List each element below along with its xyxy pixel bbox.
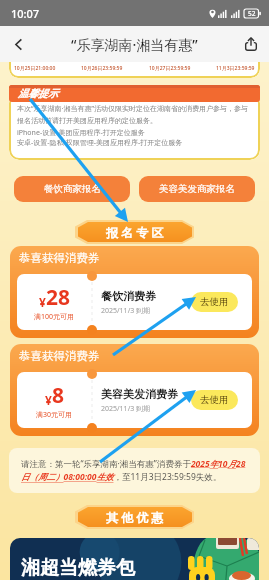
button[interactable]: 去使用: [191, 390, 238, 410]
button[interactable]: 餐饮商家报名: [14, 176, 130, 202]
staticText: 餐饮商家报名: [44, 183, 101, 195]
staticText: 10月25日21:00:00: [14, 65, 56, 72]
staticText: 52: [248, 9, 256, 18]
staticText: 餐饮消费券: [101, 289, 156, 303]
staticText: “乐享湖南·湘当有惠”: [71, 35, 198, 54]
staticText: ¥: [39, 294, 46, 310]
staticText: 10:07: [11, 6, 40, 21]
staticText: 报 名 专 区: [106, 224, 164, 240]
staticText: 安卓-设置-隐私-权限管理-美团应用程序-打开定位服务: [17, 138, 183, 148]
staticText: 湘超当燃券包: [21, 556, 135, 580]
staticText: 11月3日23:59:59: [216, 65, 255, 72]
staticText: 10月26日23:59:59: [81, 65, 123, 72]
button[interactable]: 去使用: [191, 292, 238, 312]
staticText: iPhone-设置-美团应用程序-打开定位服务: [17, 128, 145, 138]
staticText: 其 他 优 惠: [106, 509, 164, 525]
staticText: 美容美发消费券: [101, 387, 178, 401]
staticText: 2025/11/3 到期: [101, 404, 151, 414]
staticText: 温馨提示: [18, 87, 58, 100]
button[interactable]: 恭喜获得消费券: [10, 246, 259, 338]
button[interactable]: 美容美发商家报名: [139, 176, 255, 202]
staticText: 满30元可用: [36, 410, 73, 420]
staticText: 2025/11/3 到期: [101, 306, 151, 316]
staticText: 请注意：第一轮“乐享湖南·湘当有惠”消费券于2025年10月28日（周二）08:…: [21, 458, 248, 483]
button[interactable]: 湘超当燃券包: [10, 538, 259, 580]
button[interactable]: 恭喜获得消费券: [10, 344, 259, 436]
button[interactable]: Share: [233, 26, 269, 62]
button[interactable]: Back: [0, 26, 36, 62]
button[interactable]: 报 名 专 区: [75, 220, 194, 244]
staticText: 28: [46, 283, 71, 312]
staticText: 满100元可用: [34, 312, 75, 322]
staticText: 去使用: [200, 394, 229, 406]
staticText: 本次“乐享湖南·湘当有惠”活动仅限实时定位在湖南省的消费用户参与，参与报名活动前…: [17, 104, 252, 125]
button[interactable]: 其 他 优 惠: [75, 505, 194, 529]
staticText: 恭喜获得消费券: [19, 349, 100, 363]
staticText: 恭喜获得消费券: [19, 251, 100, 265]
staticText: 8: [52, 381, 65, 410]
staticText: 去使用: [200, 296, 229, 308]
staticText: ¥: [45, 392, 52, 408]
staticText: 10月27日23:59:59: [149, 65, 191, 72]
staticText: 美容美发商家报名: [159, 183, 235, 195]
